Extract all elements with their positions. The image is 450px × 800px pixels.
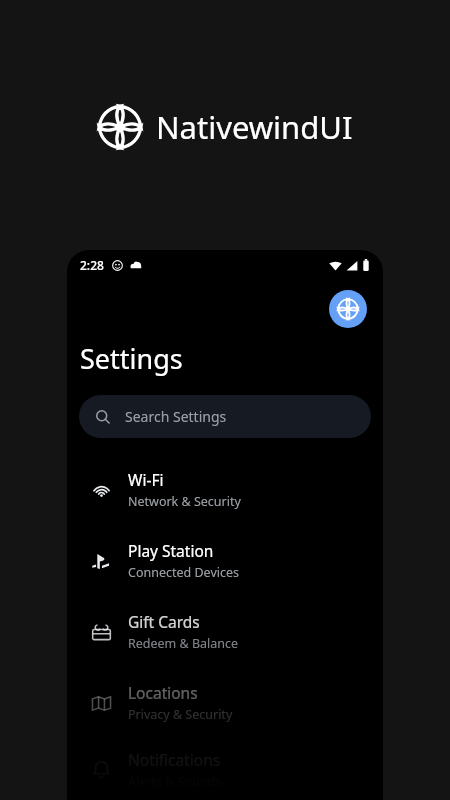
staticText: Notifications xyxy=(128,749,221,770)
button[interactable]: NativewindUI xyxy=(329,290,367,328)
staticText: NativewindUI xyxy=(156,106,353,148)
staticText: Connected Devices xyxy=(128,564,240,581)
staticText: Privacy & Security xyxy=(128,706,233,723)
staticText: Gift Cards xyxy=(128,611,200,632)
button[interactable]: Search Settings xyxy=(79,395,371,438)
button[interactable]: Gift Cards xyxy=(67,596,383,667)
staticText: Settings xyxy=(80,340,183,377)
button[interactable]: Play Station xyxy=(67,525,383,596)
button[interactable]: Wi-Fi xyxy=(67,454,383,525)
staticText: Locations xyxy=(128,682,198,703)
staticText: Redeem & Balance xyxy=(128,635,239,652)
staticText: Network & Security xyxy=(128,493,241,510)
staticText: 2:28 xyxy=(80,257,104,273)
staticText: Wi-Fi xyxy=(128,469,164,490)
staticText: Search Settings xyxy=(125,407,227,426)
button[interactable]: Locations xyxy=(67,667,383,738)
staticText: Play Station xyxy=(128,540,214,561)
